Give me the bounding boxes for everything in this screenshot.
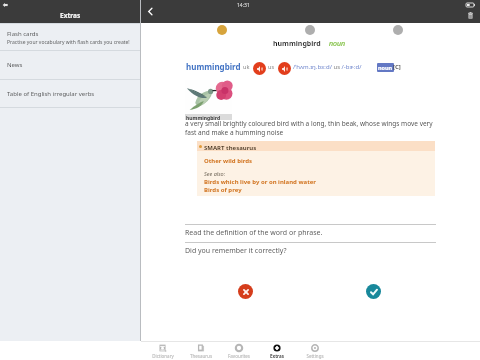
button[interactable]: Back [143,4,158,19]
button[interactable]: Play pronunciation [278,62,291,75]
button[interactable]: Card 2 [305,25,315,35]
button[interactable]: noun [378,64,393,71]
staticText: [C] [393,63,401,71]
staticText: Favourites [220,353,258,359]
staticText: noun [329,39,346,49]
button[interactable]: News [0,50,140,79]
staticText: See also: [204,170,226,177]
staticText: a very small brightly coloured bird with… [185,119,437,137]
button[interactable]: Thesaurus [182,342,220,360]
staticText: Extras [258,353,296,359]
staticText: hummingbird [186,115,221,121]
staticText: Dictionary [144,353,182,359]
staticText: us [268,63,275,70]
staticText: hummingbird [186,61,241,72]
staticText: hummingbird [273,39,321,49]
staticText: News [7,61,23,69]
button[interactable]: Extras [258,342,296,360]
button[interactable]: Incorrect [238,284,253,299]
button[interactable]: Correct [366,284,381,299]
staticText: Read the definition of the word or phras… [185,228,323,238]
button[interactable]: Card 1 [217,25,227,35]
button[interactable]: Birds which live by or on inland water [204,178,317,186]
staticText: Birds of prey [204,186,242,194]
staticText: uk [243,63,250,70]
button[interactable]: Flash cards [0,23,140,50]
staticText: Other wild birds [204,157,253,165]
staticText: /ˈhʌm.ɪŋ.bɜːd/ us /-bɝːd/ [293,63,362,71]
staticText: Birds which live by or on inland water [204,178,317,186]
button[interactable]: Birds of prey [204,186,242,194]
staticText: Did you remember it correctly? [185,246,287,256]
staticText: Thesaurus [182,353,220,359]
button[interactable]: Other wild birds [204,157,253,165]
staticText: Table of English irregular verbs [7,90,95,98]
button[interactable]: Card 3 [393,25,403,35]
staticText: 14:31 [237,2,250,9]
button[interactable]: Settings [296,342,334,360]
button[interactable]: Dictionary [144,342,182,360]
button[interactable]: Favourites [220,342,258,360]
staticText: noun [378,64,393,71]
staticText: Settings [296,353,334,359]
button[interactable]: Play pronunciation [253,62,266,75]
button[interactable]: Table of English irregular verbs [0,79,140,108]
button[interactable]: Delete [466,11,475,20]
staticText: Extras [60,11,81,20]
staticText: Flash cards [7,30,39,38]
staticText: Practise your vocabulary with flash card… [7,39,130,46]
staticText: SMART thesaurus [204,144,257,152]
